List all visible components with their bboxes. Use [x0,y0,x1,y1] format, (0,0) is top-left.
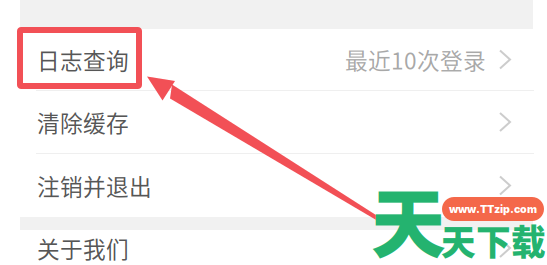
button[interactable]: 日志查询 [0,29,547,90]
button[interactable]: 清除缓存 [0,91,547,153]
staticText: 注销并退出 [37,169,152,202]
button[interactable]: 关于我们 [0,230,547,265]
staticText: 日志查询 [37,43,129,76]
staticText: 最近10次登录 [345,43,486,76]
staticText: 天 [371,165,446,265]
staticText: 天下载 [441,215,546,265]
staticText: www.TTzip.com [449,202,537,215]
button[interactable]: 注销并退出 [0,154,547,217]
staticText: 清除缓存 [37,106,129,138]
staticText: 关于我们 [37,232,129,264]
